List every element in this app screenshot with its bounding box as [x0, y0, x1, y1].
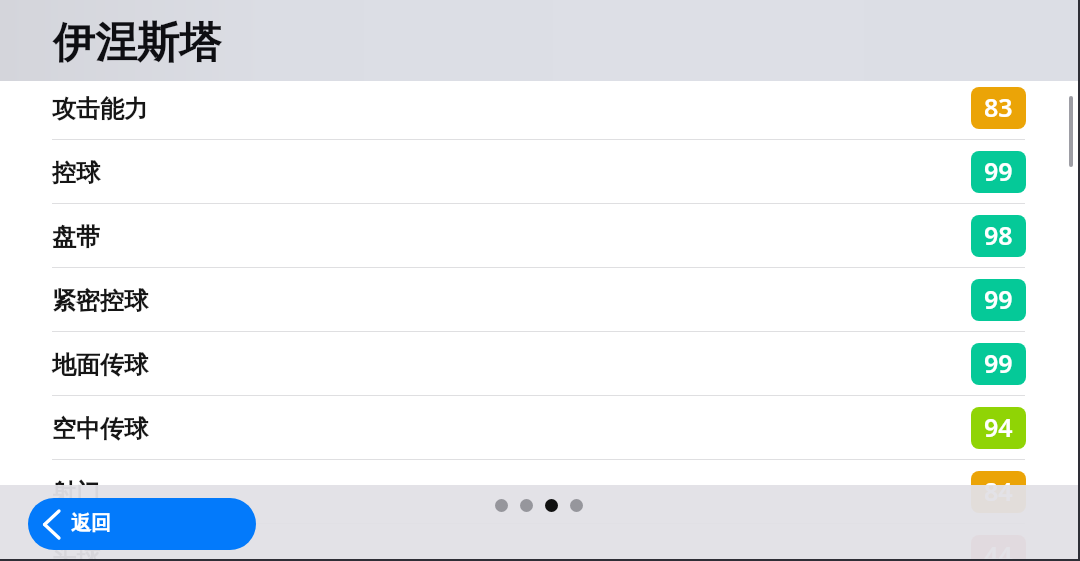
staticText: 地面传球	[52, 350, 148, 380]
button[interactable]: 头球	[0, 524, 1080, 561]
staticText: 44	[984, 538, 1013, 561]
staticText: 控球	[52, 158, 100, 188]
staticText: 攻击能力	[52, 94, 148, 124]
staticText: 84	[984, 474, 1013, 508]
staticText: 99	[984, 346, 1013, 380]
other: 返回	[43, 511, 59, 538]
staticText: 返回	[71, 511, 111, 536]
staticText: 83	[984, 90, 1013, 124]
button[interactable]: 第 2 页	[520, 499, 533, 512]
button[interactable]: 第 4 页	[570, 499, 583, 512]
button[interactable]: 空中传球	[0, 396, 1080, 460]
staticText: 盘带	[52, 222, 100, 252]
staticText: 99	[984, 154, 1013, 188]
button[interactable]: 第 1 页	[495, 499, 508, 512]
button[interactable]: 紧密控球	[0, 268, 1080, 332]
staticText: 99	[984, 282, 1013, 316]
button[interactable]: 盘带	[0, 204, 1080, 268]
staticText: 98	[984, 218, 1013, 252]
button[interactable]: 返回	[28, 498, 256, 550]
staticText: 94	[984, 410, 1013, 444]
button[interactable]: 地面传球	[0, 332, 1080, 396]
staticText: 射门	[52, 478, 100, 508]
staticText: 空中传球	[52, 414, 148, 444]
button[interactable]: 攻击能力	[0, 76, 1080, 140]
button[interactable]: 控球	[0, 140, 1080, 204]
staticText: 头球	[52, 542, 100, 561]
staticText: 伊涅斯塔	[53, 17, 221, 70]
button[interactable]: 第 3 页	[545, 499, 558, 512]
button[interactable]: 射门	[0, 460, 1080, 524]
staticText: 紧密控球	[52, 286, 148, 316]
